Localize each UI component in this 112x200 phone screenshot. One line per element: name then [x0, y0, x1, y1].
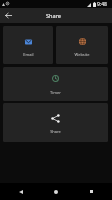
- button[interactable]: Home: [42, 183, 70, 200]
- button[interactable]: Timer: [3, 67, 108, 101]
- staticText: 9:48: [97, 1, 107, 8]
- button[interactable]: Share: [3, 103, 108, 142]
- staticText: Timer: [50, 90, 61, 95]
- staticText: Email: [23, 52, 34, 57]
- button[interactable]: Back: [2, 9, 15, 22]
- button[interactable]: Email: [3, 26, 53, 64]
- button[interactable]: Back: [7, 183, 35, 200]
- staticText: Website: [74, 52, 90, 57]
- staticText: Share: [50, 129, 61, 134]
- button[interactable]: Website: [56, 26, 108, 64]
- staticText: Share: [46, 12, 62, 20]
- button[interactable]: Recents: [77, 183, 105, 200]
